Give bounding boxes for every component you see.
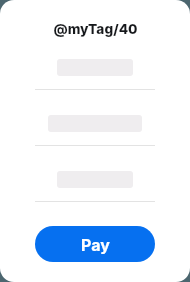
button[interactable]: Recipient (35, 115, 155, 146)
staticText: Pay (81, 235, 110, 254)
button[interactable]: Note (35, 171, 155, 202)
button[interactable]: Amount (35, 59, 155, 90)
button[interactable]: Pay (35, 226, 155, 262)
staticText: @myTag/40 (53, 21, 138, 38)
